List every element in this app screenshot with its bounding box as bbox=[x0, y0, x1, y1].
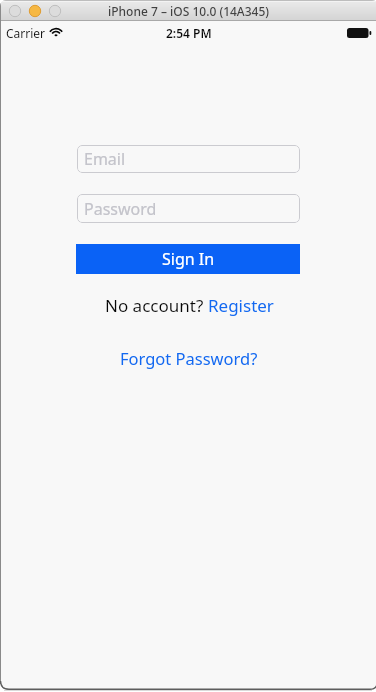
staticText: Carrier bbox=[6, 25, 46, 41]
button[interactable]: Forgot Password? bbox=[120, 347, 258, 369]
staticText: 2:54 PM bbox=[166, 25, 212, 41]
staticText: Sign In bbox=[162, 248, 215, 270]
staticText: No account? bbox=[105, 294, 208, 316]
staticText: Password bbox=[84, 198, 157, 220]
button[interactable]: Email bbox=[77, 145, 300, 173]
button[interactable]: Sign In bbox=[76, 244, 300, 274]
button[interactable]: Password bbox=[77, 194, 300, 223]
button[interactable]: Register bbox=[208, 294, 274, 316]
staticText: Email bbox=[84, 148, 126, 170]
staticText: iPhone 7 – iOS 10.0 (14A345) bbox=[108, 3, 270, 19]
